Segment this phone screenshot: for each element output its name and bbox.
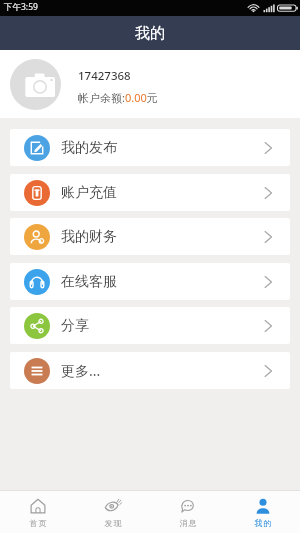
staticText: 我的 <box>135 24 165 43</box>
button[interactable]: 更多... <box>10 352 290 389</box>
button[interactable]: 我的发布 <box>10 129 290 166</box>
staticText: 下午3:59 <box>4 1 38 13</box>
button[interactable]: 分享 <box>10 307 290 344</box>
button[interactable]: 我的财务 <box>10 218 290 255</box>
button[interactable]: 我的 <box>225 491 300 533</box>
staticText: 我的 <box>254 518 272 528</box>
button[interactable]: 账户充值 <box>10 174 290 211</box>
staticText: 17427368 <box>78 68 131 84</box>
button[interactable]: 首页 <box>0 491 75 533</box>
staticText: 帐户余额:0.00元 <box>78 90 158 105</box>
staticText: 首页 <box>29 518 47 528</box>
staticText: 更多... <box>61 361 101 380</box>
staticText: 我的发布 <box>61 139 117 157</box>
button[interactable]: 头像 <box>10 59 61 110</box>
button[interactable]: 发现 <box>75 491 150 533</box>
staticText: 发现 <box>104 518 122 528</box>
staticText: 我的财务 <box>61 228 117 246</box>
staticText: 消息 <box>179 518 197 528</box>
staticText: 在线客服 <box>61 273 117 291</box>
button[interactable]: 消息 <box>150 491 225 533</box>
button[interactable]: 在线客服 <box>10 263 290 300</box>
staticText: 分享 <box>61 317 89 335</box>
staticText: 账户充值 <box>61 184 117 202</box>
